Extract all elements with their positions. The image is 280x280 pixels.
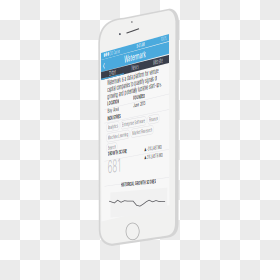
button[interactable]: Enterprise Software — [41, 4, 95, 13]
staticText: GROWTH SCORE — [13, 0, 54, 3]
staticText: 9:41 AM — [74, 1, 91, 6]
staticText: Detail — [17, 0, 31, 8]
staticText: Watermark — [48, 1, 93, 11]
button[interactable]: Machine Learning — [10, 14, 59, 23]
button[interactable]: News — [47, 0, 95, 8]
staticText: FOUNDED — [67, 1, 91, 6]
staticText: ●●●○○ Carrier — [5, 1, 40, 6]
button[interactable]: Analytics — [10, 4, 38, 13]
staticText: LOCATION — [13, 1, 38, 6]
button[interactable]: Website — [95, 0, 142, 8]
staticText: Watermark is a data platform for venture… — [13, 1, 127, 22]
staticText: June 2013 — [67, 7, 92, 14]
button[interactable]: Detail — [0, 0, 47, 8]
button[interactable]: Search — [10, 25, 33, 33]
staticText: HISTORICAL GROWTH SCORES — [40, 4, 114, 10]
staticText: Market Research — [65, 16, 107, 22]
staticText: Search — [13, 26, 30, 32]
staticText: Enterprise Software — [44, 5, 92, 11]
staticText: Analytics — [13, 5, 35, 11]
staticText: ▲ -3% LAST MO. — [90, 0, 127, 4]
button[interactable]: Market Research — [62, 14, 110, 23]
staticText: Machine Learning — [13, 16, 56, 22]
staticText: INDUSTRIES — [13, 0, 41, 2]
staticText: Bay Area — [13, 7, 37, 14]
staticText: 681 — [13, 3, 41, 24]
button[interactable]: Finance — [97, 4, 122, 13]
staticText: Website — [108, 0, 129, 8]
staticText: ▲ 3% LAST 6 MO. — [90, 7, 129, 12]
